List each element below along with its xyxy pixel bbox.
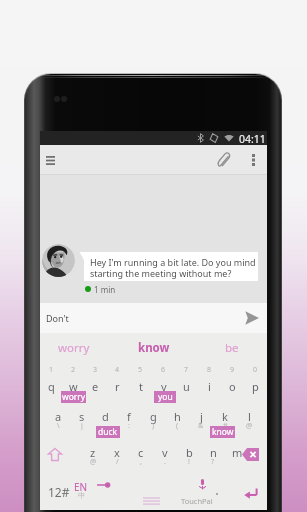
button[interactable]: Send [235,303,267,333]
staticText: u [183,379,190,394]
staticText: 1 min [94,284,116,295]
button[interactable]: z [81,442,105,475]
staticText: q [48,379,55,394]
staticText: ) [152,421,155,431]
staticText: o [229,379,236,394]
button[interactable]: j [189,405,213,442]
staticText: k [222,409,228,424]
staticText: ( [176,421,179,431]
button[interactable]: n [201,442,225,475]
button[interactable]: 6 [152,362,175,405]
button[interactable]: h [165,405,189,442]
button[interactable]: 9 [221,362,244,405]
staticText: be [225,340,239,356]
button[interactable]: Navigation menu [34,145,60,175]
staticText: 1 [49,365,54,375]
button[interactable]: 5 [129,362,152,405]
button[interactable]: d [93,405,117,442]
staticText: n [210,445,217,460]
button[interactable]: m [225,442,249,475]
staticText: m [232,445,243,460]
staticText: @ [246,421,253,431]
staticText: duck [98,426,118,438]
button[interactable]: 3 [84,362,106,405]
staticText: 7 [184,365,189,375]
button[interactable]: Shift [40,442,78,475]
button[interactable]: More options [240,145,266,175]
staticText: Don't [46,312,69,324]
staticText: 3 [93,365,98,375]
staticText: j [200,409,203,424]
staticText: r [115,379,120,394]
staticText: | [80,421,84,431]
staticText: 6 [161,365,166,375]
button[interactable]: 2 [62,362,84,405]
staticText: 8 [207,365,212,375]
staticText: \ [57,421,60,431]
button[interactable]: worry [61,391,86,403]
button[interactable]: v [153,442,177,475]
staticText: / [116,457,119,467]
button[interactable]: EN [66,475,96,512]
staticText: . [164,457,166,467]
staticText: y [161,379,167,394]
staticText: know [138,340,170,356]
staticText: 2 [71,365,76,375]
button[interactable]: Backspace [233,442,267,475]
button[interactable]: 0 [244,362,267,405]
button[interactable]: you [154,391,176,403]
button[interactable]: 8 [198,362,221,405]
staticText: TouchPal [181,496,213,506]
button[interactable]: 4 [106,362,129,405]
staticText: ? [211,457,215,467]
staticText: Hey I'm running a bit late. Do you mind … [90,256,256,280]
button[interactable]: 1 [40,362,62,405]
staticText: d [102,409,109,424]
staticText: @ [90,457,97,467]
button[interactable]: be [191,333,267,362]
staticText: b [186,445,193,460]
staticText: worry [62,391,86,403]
button[interactable]: c [129,442,153,475]
button[interactable]: Attach file [210,145,238,175]
staticText: & [198,421,204,431]
staticText: 0 [253,365,258,375]
staticText: i [208,379,211,394]
staticText: a [55,409,62,424]
button[interactable]: 7 [175,362,198,405]
staticText: 5 [138,365,143,375]
staticText: w [69,379,78,394]
staticText: : [128,421,130,431]
button[interactable]: 12# [40,475,78,512]
staticText: s [79,409,85,424]
staticText: # [223,421,228,431]
button[interactable]: know [210,426,235,438]
button[interactable]: a [47,405,70,442]
staticText: p [252,379,259,394]
staticText: x [114,445,120,460]
button[interactable]: g [141,405,165,442]
button[interactable]: duck [96,426,120,438]
staticText: - [104,421,107,431]
staticText: know [212,426,234,438]
staticText: h [174,409,181,424]
button[interactable]: Space [122,475,202,512]
button[interactable]: know [115,333,191,362]
staticText: , [140,457,142,467]
staticText: c [138,445,144,460]
staticText: 04:11 [239,132,266,146]
staticText: l [248,409,251,424]
button[interactable]: Keyboard settings [91,475,115,512]
staticText: t [139,379,143,394]
staticText: 中 [78,491,85,500]
button[interactable]: x [105,442,129,475]
button[interactable]: s [70,405,93,442]
button[interactable]: Enter [236,475,267,512]
button[interactable]: f [117,405,141,442]
button[interactable]: l [237,405,261,442]
button[interactable]: b [177,442,201,475]
staticText: worry [58,340,90,356]
button[interactable]: Voice input [180,475,234,512]
button[interactable]: k [213,405,237,442]
button[interactable]: worry [40,333,115,362]
